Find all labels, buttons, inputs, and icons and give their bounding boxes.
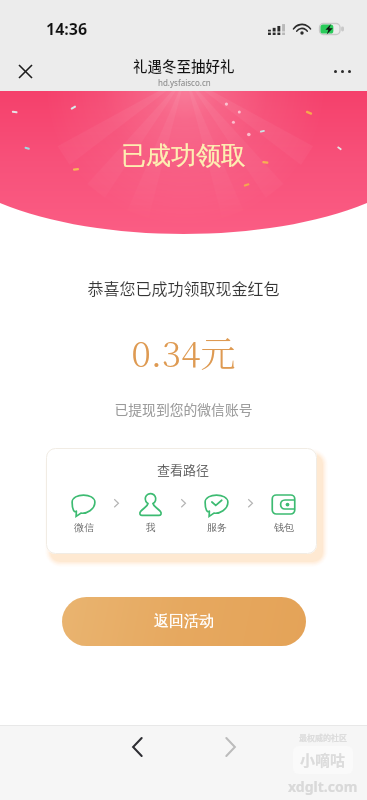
button[interactable]: More options <box>324 55 360 88</box>
staticText: 恭喜您已成功领取现金红包 <box>0 276 367 299</box>
staticText: 微信 <box>74 521 94 534</box>
button[interactable]: Forward <box>212 729 248 765</box>
button[interactable]: Back <box>119 729 155 765</box>
staticText: xdglt.com <box>288 777 358 796</box>
button[interactable]: Close <box>7 55 43 88</box>
staticText: 礼遇冬至抽好礼 <box>133 55 235 76</box>
staticText: 我 <box>146 521 156 534</box>
staticText: 服务 <box>207 521 227 534</box>
staticText: 已成功领取 <box>121 140 246 171</box>
staticText: 已提现到您的微信账号 <box>0 399 367 419</box>
staticText: 14:36 <box>46 18 88 40</box>
staticText: 0.34元 <box>0 327 367 377</box>
staticText: 返回活动 <box>154 612 214 631</box>
staticText: 最权威的社区 <box>299 732 347 744</box>
staticText: 钱包 <box>274 521 294 534</box>
button[interactable]: 返回活动 <box>62 597 306 646</box>
staticText: hd.ysfaisco.cn <box>158 77 211 88</box>
staticText: 查看路径 <box>157 460 210 479</box>
staticText: 小嘀咕 <box>300 749 346 771</box>
